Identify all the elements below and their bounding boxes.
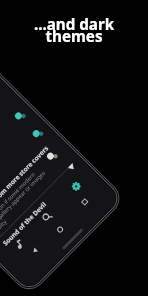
staticText: Sound of the Devil (1, 200, 48, 248)
button[interactable]: Colour (12, 108, 28, 124)
button[interactable]: Search (28, 197, 67, 237)
button[interactable]: Back (19, 235, 51, 267)
button[interactable]: Choose from more store covers (0, 143, 77, 247)
staticText: ...and dark themes (26, 14, 122, 47)
button[interactable]: Home (44, 213, 76, 246)
staticText: Choose from more store covers (0, 143, 50, 221)
button[interactable]: Colour (30, 126, 46, 141)
button[interactable]: Recents (68, 186, 101, 218)
staticText: A selection if some modern from gallery … (0, 165, 52, 236)
button[interactable]: Colour (44, 148, 60, 164)
button[interactable]: Settings (56, 166, 96, 206)
button[interactable]: Library (0, 224, 39, 264)
button[interactable]: Play (65, 161, 78, 174)
